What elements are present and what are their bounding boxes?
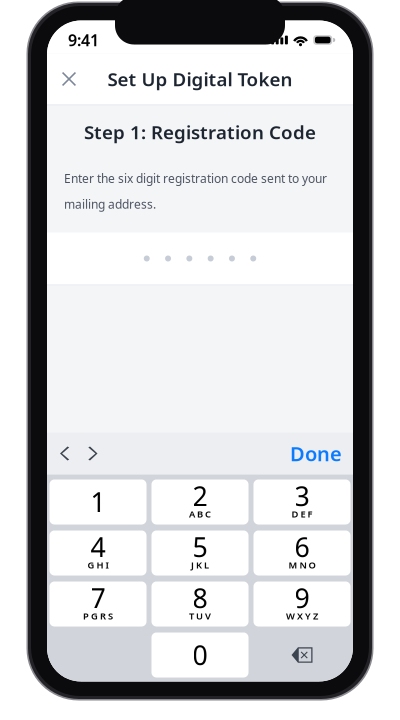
staticText: 6 bbox=[294, 529, 309, 565]
button[interactable]: 0 bbox=[151, 632, 248, 677]
staticText: 8 bbox=[192, 580, 207, 616]
button[interactable]: Close bbox=[47, 53, 91, 104]
button[interactable]: 8 bbox=[151, 581, 248, 626]
button[interactable]: 6 bbox=[253, 530, 350, 575]
button[interactable]: 3 bbox=[253, 479, 350, 524]
button[interactable]: Delete bbox=[253, 632, 350, 677]
button[interactable]: 1 bbox=[49, 479, 146, 524]
button[interactable]: Done bbox=[280, 432, 352, 474]
staticText: Done bbox=[290, 440, 342, 467]
staticText: 5 bbox=[192, 529, 207, 565]
staticText: Set Up Digital Token bbox=[107, 67, 292, 91]
staticText: W X Y Z bbox=[286, 610, 318, 622]
staticText: 1 bbox=[90, 484, 105, 520]
staticText: mailing address. bbox=[64, 196, 156, 212]
button[interactable]: 5 bbox=[151, 530, 248, 575]
staticText: P G R S bbox=[83, 610, 113, 622]
staticText: 4 bbox=[90, 529, 105, 565]
staticText: Enter the six digit registration code se… bbox=[64, 170, 327, 186]
button[interactable]: Previous field bbox=[50, 432, 80, 474]
staticText: 0 bbox=[192, 637, 207, 673]
staticText: 7 bbox=[90, 580, 105, 616]
button[interactable]: 7 bbox=[49, 581, 146, 626]
button[interactable]: 2 bbox=[151, 479, 248, 524]
staticText: Step 1: Registration Code bbox=[84, 119, 316, 144]
button[interactable]: 4 bbox=[49, 530, 146, 575]
staticText: 3 bbox=[294, 478, 309, 514]
button[interactable]: Next field bbox=[80, 432, 110, 474]
staticText: 9 bbox=[294, 580, 309, 616]
staticText: T U V bbox=[189, 610, 211, 622]
button[interactable]: 9 bbox=[253, 581, 350, 626]
staticText: D E F bbox=[291, 508, 312, 520]
staticText: M N O bbox=[288, 559, 315, 571]
staticText: A B C bbox=[189, 508, 211, 520]
staticText: G H I bbox=[87, 559, 108, 571]
staticText: 9:41 bbox=[68, 29, 99, 51]
staticText: 2 bbox=[192, 478, 207, 514]
staticText: J K L bbox=[191, 559, 209, 571]
